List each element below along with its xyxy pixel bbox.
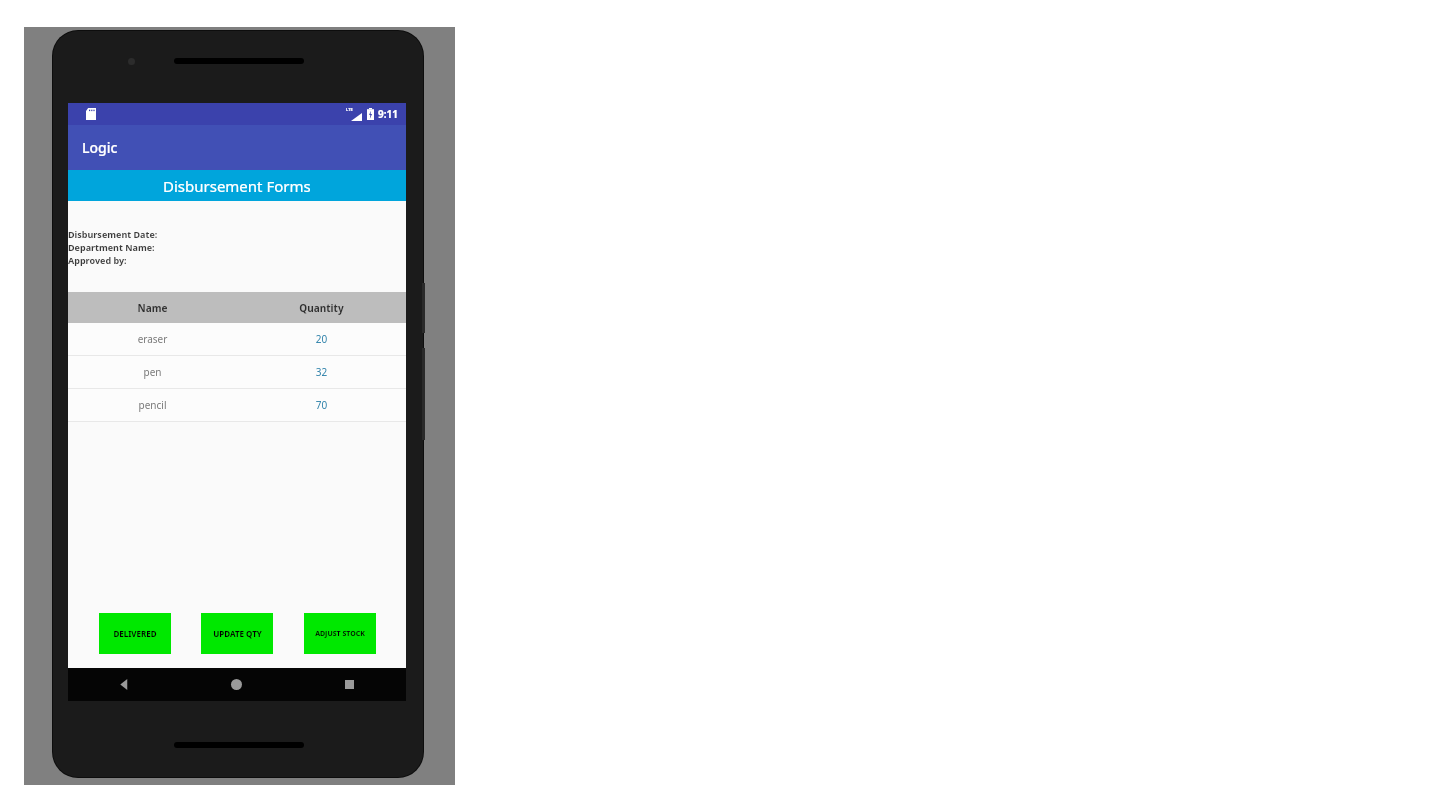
button[interactable]: UPDATE QTY [201,613,273,654]
staticText: UPDATE QTY [213,628,262,639]
button[interactable]: Home [180,668,293,701]
staticText: ADJUST STOCK [315,629,365,639]
staticText: Approved by: [68,254,127,266]
staticText: 20 [237,332,406,346]
button[interactable]: pen [68,356,406,388]
button[interactable]: DELIVERED [99,613,171,654]
staticText: Logic [82,138,118,157]
staticText: Name [68,301,237,315]
staticText: pencil [68,398,237,412]
staticText: LTE [346,107,353,112]
staticText: DELIVERED [113,628,157,639]
staticText: Disbursement Date: [68,228,158,240]
button[interactable]: eraser [68,323,406,355]
staticText: pen [68,365,237,379]
button[interactable]: ADJUST STOCK [304,613,376,654]
staticText: 9:11 [378,107,398,121]
button[interactable]: pencil [68,389,406,421]
staticText: Quantity [237,301,406,315]
staticText: Disbursement Forms [163,176,311,196]
button[interactable]: Logic [68,125,406,170]
button[interactable]: Disbursement Forms [68,170,406,201]
button[interactable]: Back [68,668,180,701]
staticText: 32 [237,365,406,379]
staticText: eraser [68,332,237,346]
staticText: Department Name: [68,241,155,253]
button[interactable]: Recent apps [293,668,406,701]
staticText: 70 [237,398,406,412]
